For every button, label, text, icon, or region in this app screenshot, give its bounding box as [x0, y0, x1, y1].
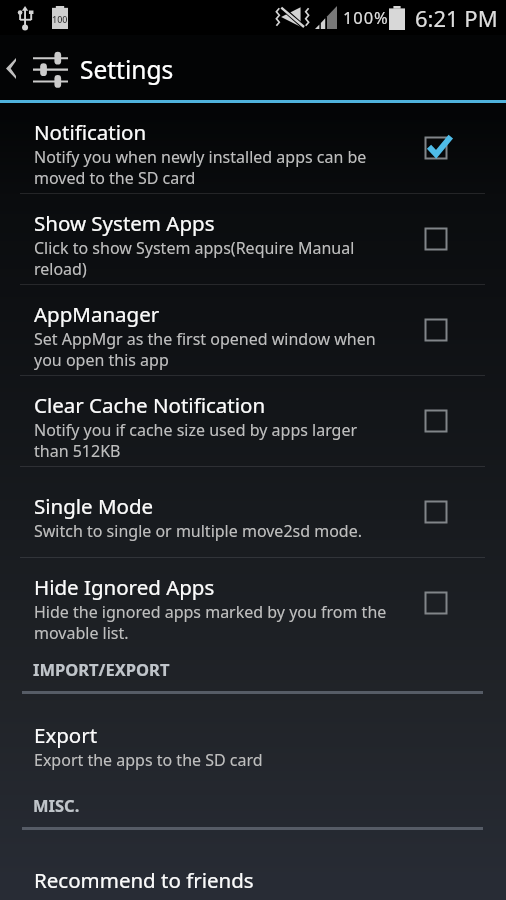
staticText: Hide Ignored Apps	[34, 573, 215, 601]
staticText: Notify you if cache size used by apps la…	[34, 419, 358, 462]
button[interactable]: Hide Ignored Apps	[0, 558, 506, 648]
button[interactable]: Single Mode	[0, 467, 506, 557]
staticText: Show System Apps	[34, 209, 215, 237]
staticText: Notify you when newly installed apps can…	[34, 146, 367, 189]
staticText: Recommend to friends	[34, 866, 254, 894]
button[interactable]: Export	[0, 694, 506, 778]
staticText: Switch to single or multiple move2sd mod…	[34, 520, 363, 542]
staticText: Clear Cache Notification	[34, 391, 266, 419]
staticText: Export	[34, 721, 98, 749]
staticText: Export the apps to the SD card	[34, 749, 263, 771]
staticText: 100%	[343, 6, 389, 28]
button[interactable]: Navigate up to Settings	[0, 35, 506, 100]
button[interactable]: Notification	[0, 103, 506, 193]
button[interactable]: Show System Apps	[0, 194, 506, 284]
staticText: Click to show System apps(Require Manual…	[34, 237, 355, 280]
staticText: Settings	[80, 53, 174, 86]
staticText: 6:21 PM	[415, 3, 498, 33]
staticText: IMPORT/EXPORT	[33, 658, 170, 680]
button[interactable]: Clear Cache Notification	[0, 376, 506, 466]
button[interactable]: AppManager	[0, 285, 506, 375]
staticText: Notification	[34, 118, 147, 146]
staticText: MISC.	[33, 794, 80, 816]
staticText: Single Mode	[34, 492, 154, 520]
staticText: 100	[52, 13, 68, 25]
staticText: AppManager	[34, 300, 160, 328]
staticText: Hide the ignored apps marked by you from…	[34, 601, 387, 644]
staticText: Set AppMgr as the first opened window wh…	[34, 328, 376, 371]
button[interactable]: Recommend to friends	[0, 830, 506, 900]
